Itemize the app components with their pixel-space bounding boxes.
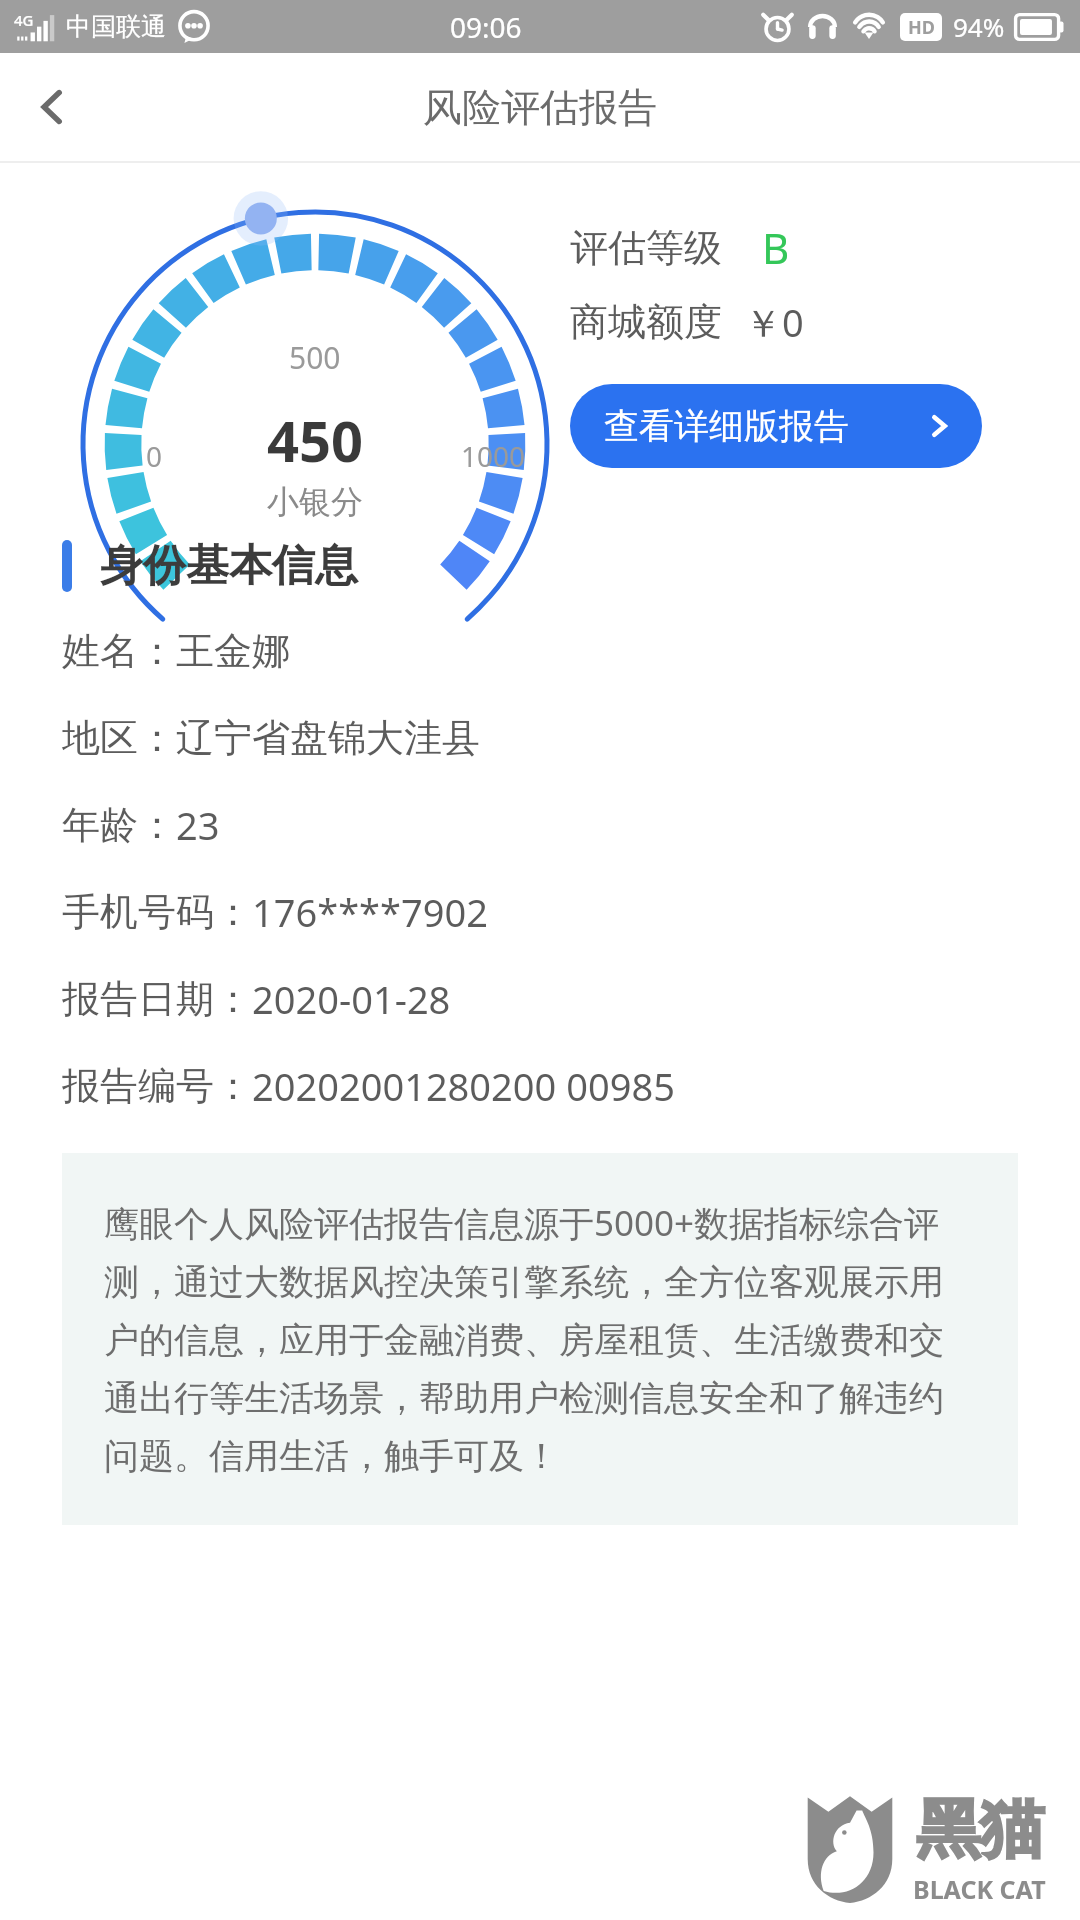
staticText: 500 — [289, 337, 341, 378]
staticText: 2020-01-28 — [252, 973, 451, 1025]
staticText: 176****7902 — [252, 886, 488, 938]
staticText: 23 — [176, 799, 220, 851]
button[interactable]: 查看详细版报告 — [570, 384, 982, 468]
staticText: 0 — [146, 437, 163, 475]
staticText: 小银分 — [267, 482, 363, 522]
staticText: 94% — [953, 9, 1005, 44]
staticText: 年龄： — [62, 801, 176, 849]
staticText: 报告日期： — [62, 975, 252, 1023]
staticText: 09:06 — [450, 8, 522, 46]
staticText: 地区： — [62, 714, 176, 762]
staticText: 中国联通 — [66, 11, 166, 42]
staticText: 风险评估报告 — [423, 83, 657, 132]
staticText: 姓名： — [62, 627, 176, 675]
staticText: 评估等级 — [570, 224, 722, 272]
staticText: 1000 — [461, 437, 526, 475]
staticText: 手机号码： — [62, 888, 252, 936]
button[interactable]: Back — [0, 53, 104, 161]
staticText: 身份基本信息 — [100, 539, 358, 593]
staticText: B — [762, 219, 790, 276]
staticText: ￥0 — [744, 296, 804, 348]
staticText: 黑猫 — [916, 1789, 1044, 1870]
staticText: 4G — [14, 10, 34, 30]
staticText: 鹰眼个人风险评估报告信息源于5000+数据指标综合评测，通过大数据风控决策引擎系… — [104, 1199, 976, 1479]
staticText: 450 — [267, 402, 364, 478]
staticText: 商城额度 — [570, 298, 722, 346]
staticText: HD — [908, 15, 935, 40]
staticText: 20202001280200 00985 — [252, 1060, 675, 1112]
staticText: BLACK CAT — [913, 1872, 1046, 1906]
staticText: 辽宁省盘锦大洼县 — [176, 714, 480, 762]
staticText: 王金娜 — [176, 627, 290, 675]
staticText: 查看详细版报告 — [604, 404, 849, 448]
staticText: 报告编号： — [62, 1062, 252, 1110]
